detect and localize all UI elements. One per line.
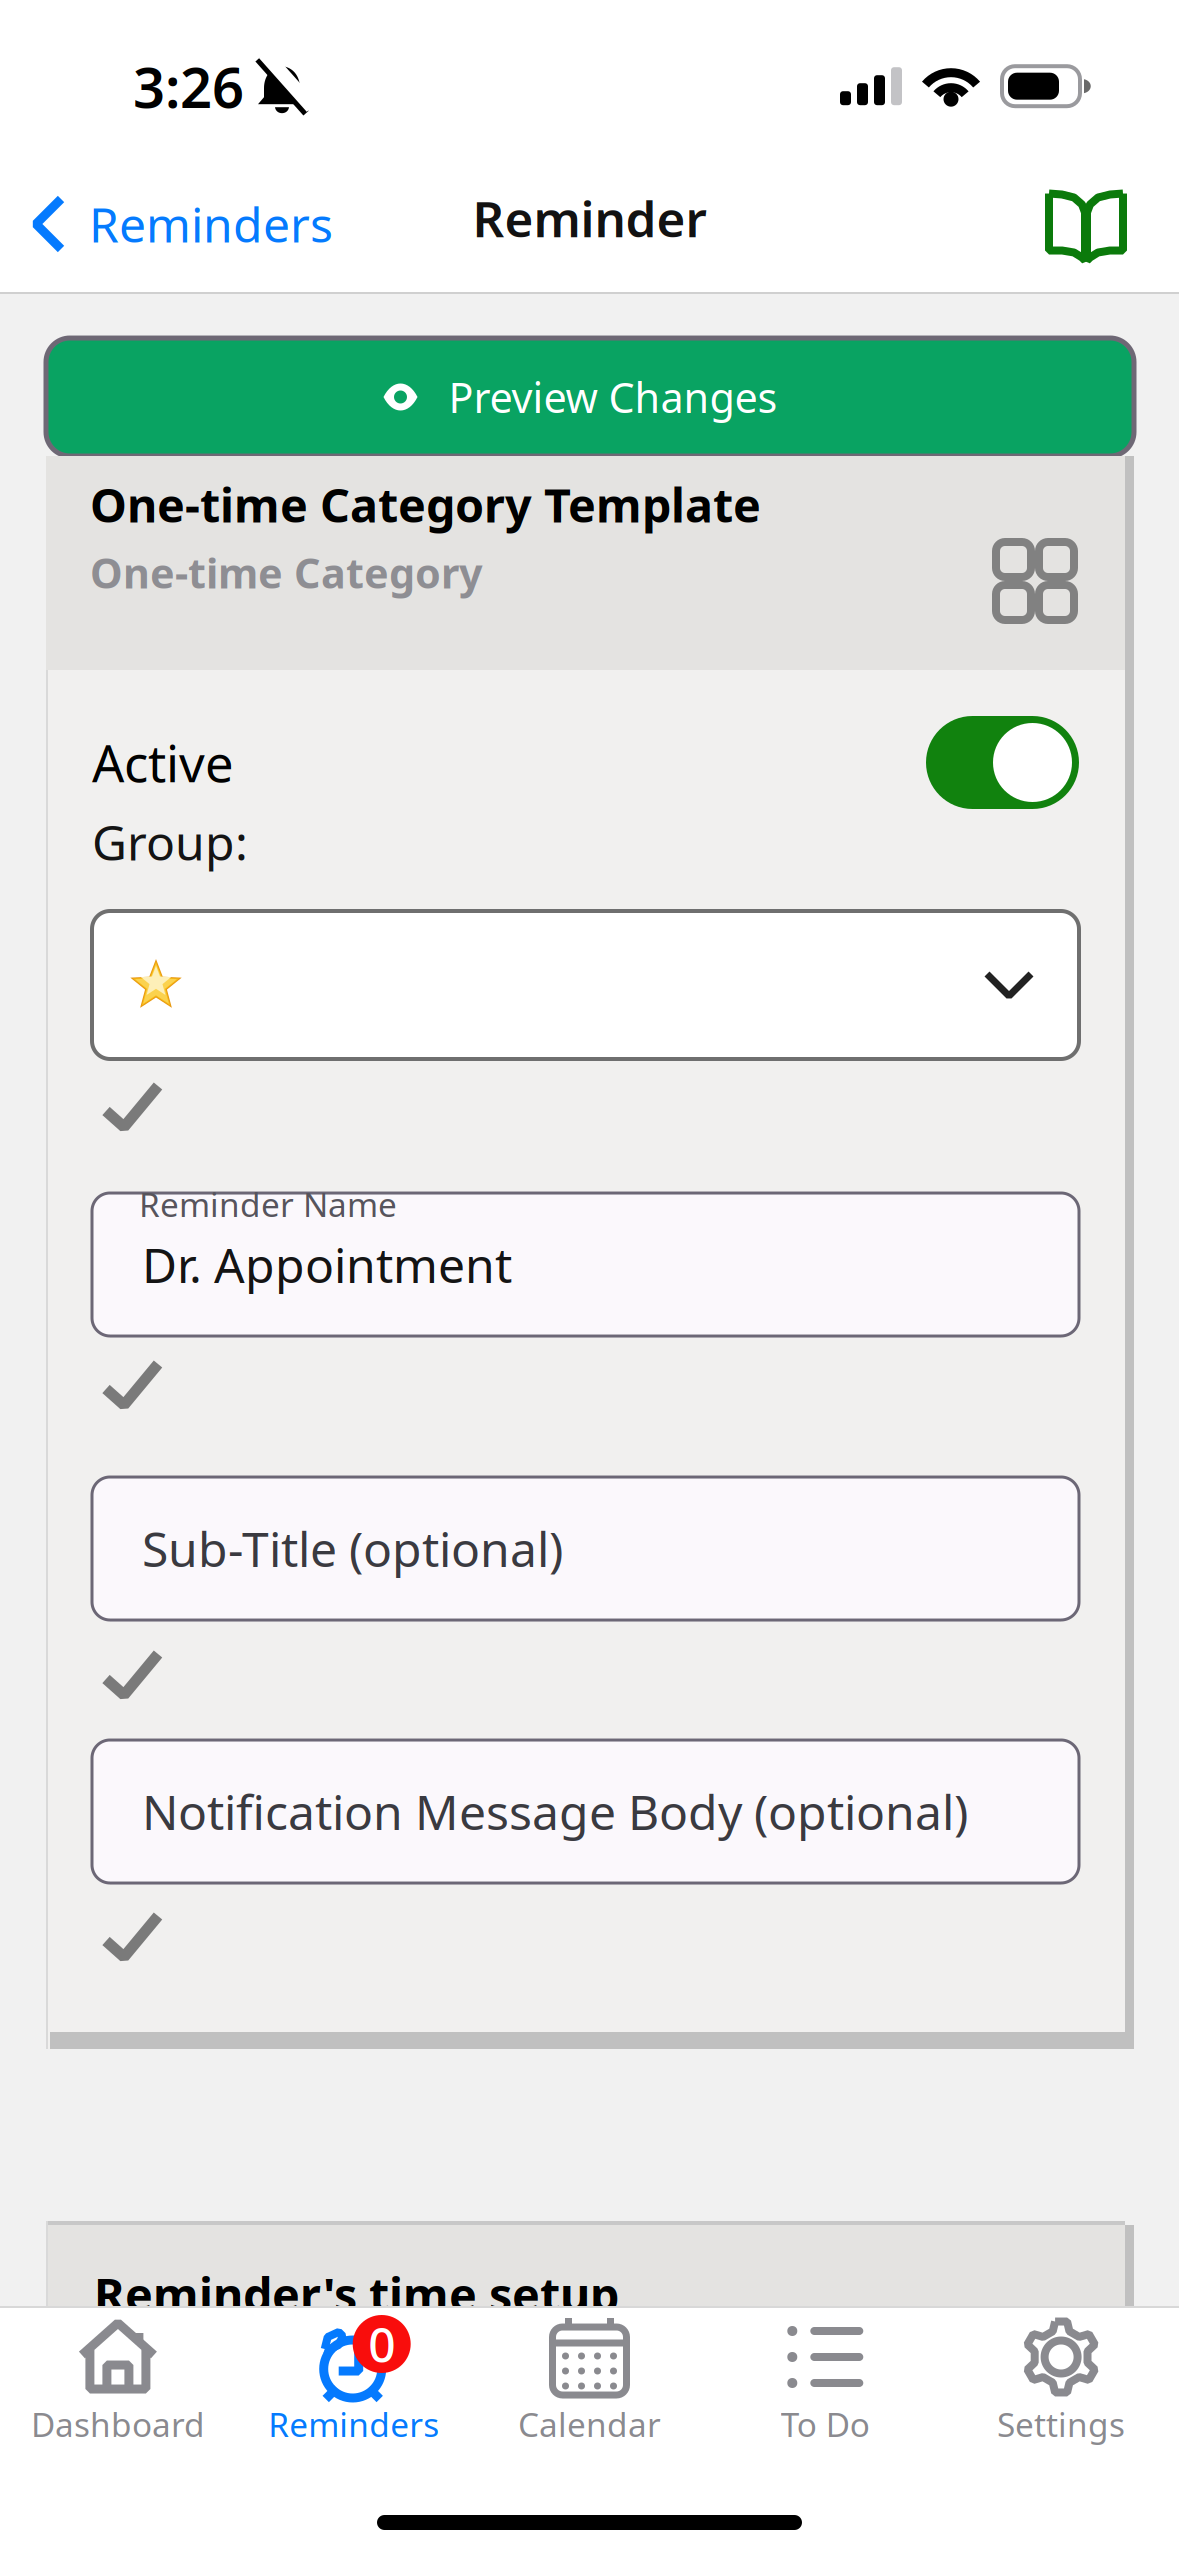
button[interactable]: To Do	[707, 2298, 943, 2476]
staticText: Notification Message Body (optional)	[142, 1780, 968, 1843]
button[interactable]: Guide	[1044, 153, 1179, 282]
staticText: Calendar	[518, 2402, 661, 2446]
staticText: 0	[368, 2312, 395, 2376]
button[interactable]: Reminders	[0, 164, 333, 272]
button[interactable]: Settings	[943, 2298, 1179, 2476]
staticText: Reminders	[89, 192, 333, 256]
staticText: To Do	[781, 2402, 870, 2446]
staticText: Reminder's time setup	[94, 2263, 619, 2325]
staticText: One-time Category Template	[90, 473, 761, 535]
button[interactable]: Layout	[996, 542, 1074, 620]
button[interactable]: 0	[236, 2298, 472, 2476]
button[interactable]: Calendar	[472, 2298, 707, 2476]
button[interactable]: Dashboard	[0, 2298, 236, 2476]
staticText: Reminder Name	[139, 1182, 397, 1226]
staticText: Dr. Appointment	[142, 1233, 512, 1296]
staticText: Group:	[92, 810, 248, 874]
staticText: Preview Changes	[448, 370, 777, 424]
staticText: Settings	[997, 2402, 1125, 2446]
staticText: One-time Category	[90, 545, 483, 600]
staticText: Reminder	[472, 185, 706, 251]
staticText: Sub-Title (optional)	[142, 1517, 563, 1580]
staticText: 3:26	[133, 49, 244, 123]
button[interactable]: Active	[926, 716, 1079, 809]
button[interactable]: Preview Changes	[46, 338, 1134, 456]
staticText: Reminders	[268, 2402, 439, 2446]
staticText: Dashboard	[31, 2402, 205, 2446]
button[interactable]	[92, 911, 1079, 1059]
staticText: Active	[92, 729, 234, 796]
